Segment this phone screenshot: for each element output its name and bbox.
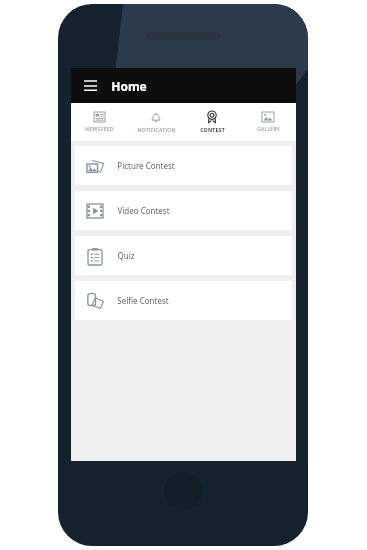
- staticText: NEWSFEED: [85, 125, 114, 132]
- staticText: Video Contest: [117, 205, 170, 216]
- staticText: NOTIFICATION: [137, 126, 176, 133]
- button[interactable]: NOTIFICATION: [128, 103, 184, 141]
- staticText: Quiz: [117, 250, 135, 261]
- button[interactable]: Quiz: [75, 236, 292, 275]
- staticText: Picture Contest: [117, 160, 175, 171]
- staticText: Home: [111, 78, 147, 94]
- button[interactable]: Video Contest: [75, 191, 292, 230]
- staticText: Selfie Contest: [117, 295, 169, 306]
- button[interactable]: GALLERY: [240, 103, 296, 141]
- button[interactable]: Selfie Contest: [75, 281, 292, 320]
- staticText: CONTEST: [200, 126, 225, 133]
- button[interactable]: NEWSFEED: [71, 103, 128, 141]
- button[interactable]: CONTEST: [184, 103, 240, 141]
- button[interactable]: Open navigation menu: [79, 75, 101, 97]
- button[interactable]: Picture Contest: [75, 146, 292, 185]
- staticText: GALLERY: [257, 125, 280, 132]
